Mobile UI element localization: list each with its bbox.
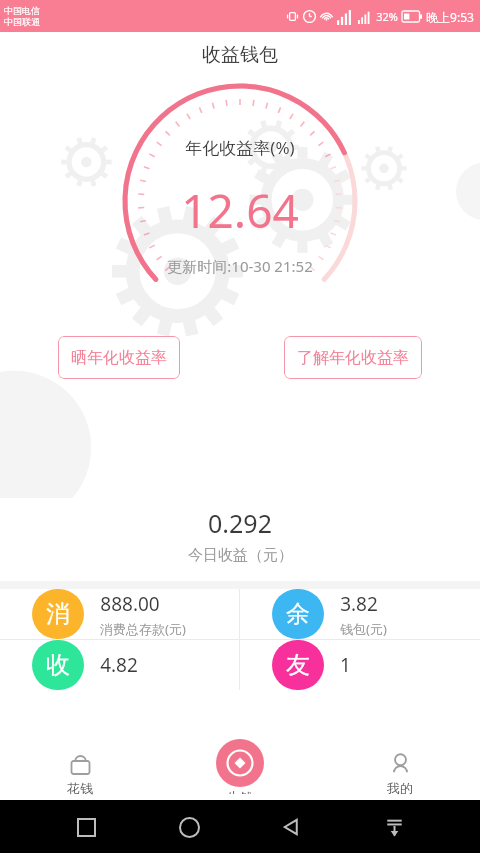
- staticText: 年化收益率(%): [185, 136, 295, 159]
- staticText: 余: [286, 599, 310, 629]
- button[interactable]: 生钱: [160, 747, 320, 800]
- staticText: 收益钱包: [202, 43, 278, 67]
- button[interactable]: Spend money: [0, 747, 160, 800]
- staticText: 中国电信: [4, 5, 40, 16]
- staticText: 晚上9:53: [426, 9, 474, 25]
- staticText: 生钱: [227, 789, 253, 794]
- button[interactable]: Back: [274, 810, 308, 844]
- staticText: 花钱: [67, 780, 93, 796]
- button[interactable]: 友: [240, 640, 480, 690]
- staticText: 32%: [376, 9, 398, 24]
- button[interactable]: Hide navigation bar: [377, 810, 411, 844]
- button[interactable]: 收: [0, 640, 239, 690]
- button[interactable]: Recents: [69, 810, 103, 844]
- staticText: 消: [46, 599, 70, 629]
- staticText: 12.64: [181, 179, 299, 242]
- staticText: 消费总存款(元): [100, 620, 186, 638]
- staticText: 1: [340, 652, 351, 678]
- staticText: 我的: [387, 780, 413, 796]
- button[interactable]: 了解年化收益率: [284, 336, 422, 379]
- staticText: 888.00: [100, 591, 160, 617]
- button[interactable]: 余: [240, 589, 480, 639]
- staticText: 钱包(元): [340, 620, 387, 638]
- staticText: 收: [46, 650, 70, 680]
- staticText: 了解年化收益率: [297, 348, 409, 368]
- staticText: 3.82: [340, 591, 378, 617]
- staticText: 友: [286, 650, 310, 680]
- button[interactable]: Home: [172, 810, 206, 844]
- staticText: 中国联通: [4, 16, 40, 27]
- button[interactable]: 晒年化收益率: [58, 336, 180, 379]
- staticText: 更新时间:10-30 21:52: [167, 256, 313, 276]
- staticText: 今日收益（元）: [188, 546, 293, 565]
- staticText: 0.292: [208, 506, 272, 540]
- button[interactable]: 消: [0, 589, 239, 639]
- button[interactable]: My profile: [320, 747, 480, 800]
- staticText: 4.82: [100, 652, 138, 678]
- staticText: 晒年化收益率: [71, 348, 167, 368]
